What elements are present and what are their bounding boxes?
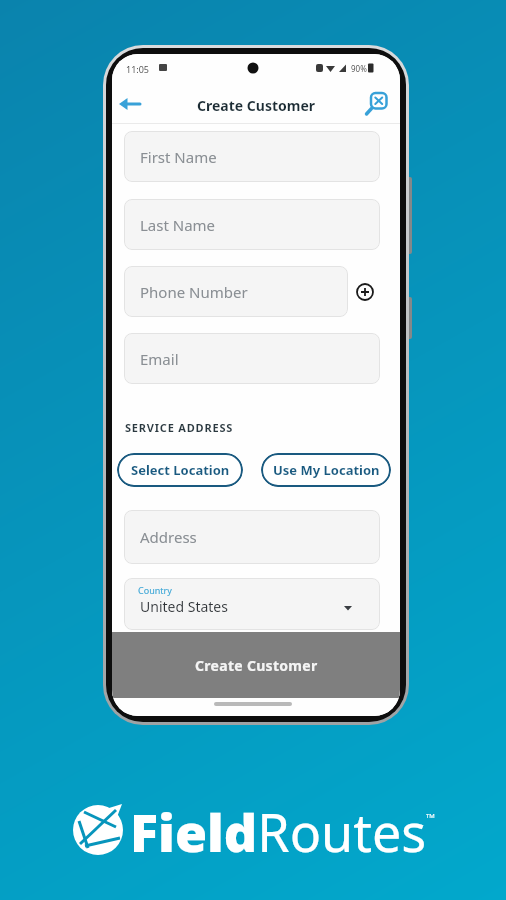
button[interactable]: [364, 91, 392, 119]
staticText: Last Name: [140, 215, 216, 235]
staticText: SERVICE ADDRESS: [125, 420, 234, 435]
staticText: Email: [140, 349, 179, 369]
button[interactable]: Country: [124, 578, 380, 630]
staticText: Create Customer: [195, 656, 318, 675]
staticText: FieldRoutes: [130, 796, 427, 858]
button[interactable]: Address: [124, 510, 380, 564]
staticText: First Name: [140, 147, 217, 167]
button[interactable]: Phone Number: [124, 266, 348, 317]
button[interactable]: Use My Location: [261, 453, 391, 487]
button[interactable]: First Name: [124, 131, 380, 182]
staticText: Phone Number: [140, 282, 248, 302]
staticText: Use My Location: [273, 461, 380, 479]
staticText: Create Customer: [112, 96, 400, 115]
staticText: Address: [140, 527, 197, 547]
staticText: Select Location: [131, 461, 230, 479]
button[interactable]: Email: [124, 333, 380, 384]
button[interactable]: Select Location: [117, 453, 243, 487]
staticText: 90%: [351, 63, 367, 74]
button[interactable]: Last Name: [124, 199, 380, 250]
staticText: Country: [138, 584, 172, 596]
button[interactable]: [356, 283, 374, 301]
staticText: United States: [140, 597, 228, 616]
button[interactable]: [116, 90, 152, 118]
staticText: 11:05: [126, 63, 150, 75]
button[interactable]: Create Customer: [112, 632, 400, 698]
staticText: TM: [426, 812, 435, 820]
